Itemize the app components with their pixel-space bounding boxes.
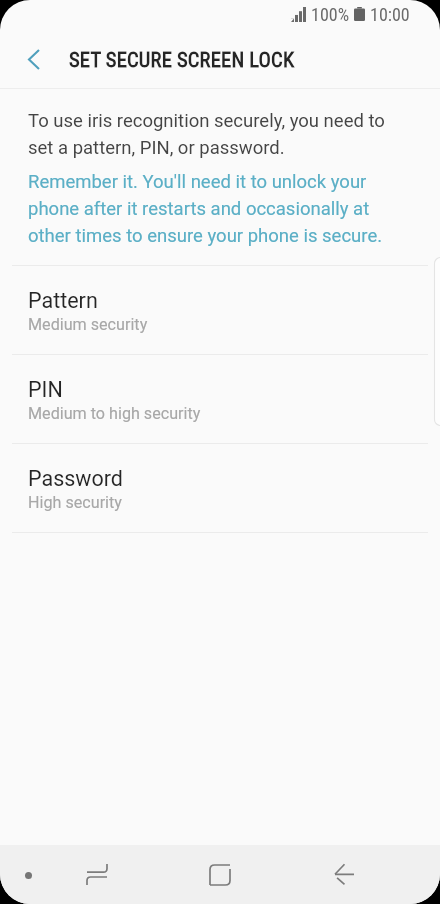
button[interactable]: Home xyxy=(193,845,247,904)
staticText: PIN xyxy=(28,377,63,402)
button[interactable]: Show keyboard xyxy=(8,845,48,904)
button[interactable]: Password xyxy=(0,444,440,532)
staticText: SET SECURE SCREEN LOCK xyxy=(69,48,295,72)
staticText: Medium to high security xyxy=(28,404,201,423)
button[interactable]: Recent apps xyxy=(70,845,124,904)
staticText: Password xyxy=(28,466,123,491)
staticText: Pattern xyxy=(28,288,98,313)
staticText: Remember it. You'll need it to unlock yo… xyxy=(28,167,396,248)
staticText: High security xyxy=(28,493,122,512)
button[interactable]: PIN xyxy=(0,355,440,443)
button[interactable]: Pattern xyxy=(0,266,440,354)
button[interactable]: Navigate up xyxy=(6,33,62,81)
button[interactable]: Back xyxy=(317,845,371,904)
staticText: To use iris recognition securely, you ne… xyxy=(28,106,396,160)
staticText: 100% xyxy=(311,4,350,25)
staticText: Medium security xyxy=(28,315,148,334)
staticText: 10:00 xyxy=(370,4,410,25)
